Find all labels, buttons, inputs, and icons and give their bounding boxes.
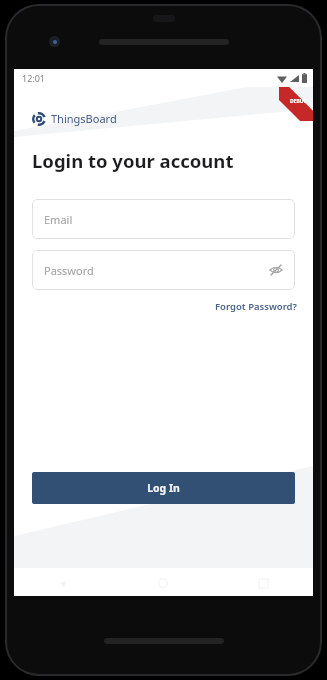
staticText: DEBUG [290,98,308,105]
staticText: Login to your account [32,148,234,173]
button[interactable]: Forgot Password? [209,298,313,315]
staticText: ThingsBoard [51,111,117,126]
button[interactable]: Password [32,250,295,290]
staticText: Password [44,263,94,278]
staticText: 12:01 [22,72,46,84]
staticText: Log In [147,481,180,495]
button[interactable]: Email [32,199,295,239]
staticText: Email [44,212,73,227]
button[interactable]: Log In [32,472,295,504]
button[interactable]: Show password [265,259,287,281]
button[interactable]: ThingsBoard [32,111,117,126]
staticText: Forgot Password? [215,300,297,313]
